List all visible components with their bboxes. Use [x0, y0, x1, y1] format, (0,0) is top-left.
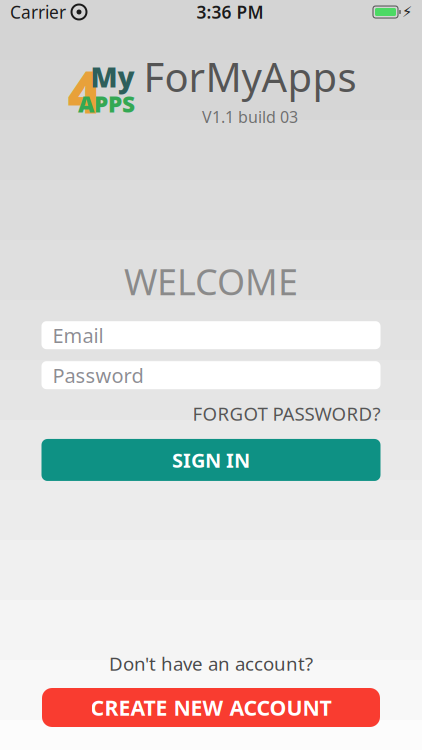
button[interactable]: CREATE NEW ACCOUNT [42, 688, 380, 727]
staticText: 3:36 PM [196, 0, 263, 23]
staticText: Don't have an account? [109, 651, 313, 676]
staticText: WELCOME [124, 257, 298, 305]
staticText: My [90, 58, 134, 95]
staticText: Email [52, 322, 103, 348]
staticText: Password [52, 362, 143, 388]
staticText: 4 [67, 52, 101, 130]
staticText: SIGN IN [172, 447, 250, 473]
staticText [66, 0, 71, 23]
staticText: ForMyApps [143, 50, 356, 103]
staticText: FORGOT PASSWORD? [192, 401, 380, 426]
button[interactable]: SIGN IN [41, 439, 380, 481]
staticText: V1.1 build 03 [202, 106, 298, 127]
staticText: CREATE NEW ACCOUNT [90, 693, 331, 722]
button[interactable]: FORGOT PASSWORD? [192, 398, 380, 429]
staticText: Carrier [10, 0, 66, 23]
staticText: ⚡︎ [402, 4, 412, 20]
staticText: APPS [78, 89, 135, 119]
